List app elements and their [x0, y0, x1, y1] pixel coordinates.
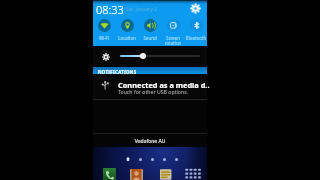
button[interactable]: Brightness [120, 50, 200, 62]
button[interactable]: Contacts [130, 169, 143, 180]
button[interactable]: Sound [139, 16, 161, 44]
staticText: NOTIFICATIONS [98, 69, 137, 75]
staticText: Bluetooth [185, 35, 207, 41]
button[interactable]: Wi-Fi [93, 16, 115, 44]
staticText: Sat, January 2 [126, 6, 157, 13]
staticText: Wi-Fi [93, 35, 115, 41]
button[interactable]: Connected as a media d.. [93, 74, 207, 98]
staticText: Sound [139, 35, 161, 41]
button[interactable]: Phone [103, 168, 116, 180]
button[interactable]: Screen rotation [162, 16, 184, 44]
button[interactable]: Bluetooth [185, 16, 207, 44]
staticText: Location [116, 35, 138, 41]
staticText: Screen rotation [162, 35, 184, 46]
button[interactable]: Messaging [160, 168, 173, 180]
staticText: 08:33 [96, 2, 124, 17]
staticText: Touch for other USB options. [118, 88, 189, 95]
button[interactable]: Location [116, 16, 138, 44]
button[interactable]: Settings [189, 2, 202, 15]
staticText: Vodafone AU [93, 138, 207, 145]
button[interactable]: Apps [185, 168, 202, 180]
staticText: Connected as a media d.. [118, 80, 210, 90]
